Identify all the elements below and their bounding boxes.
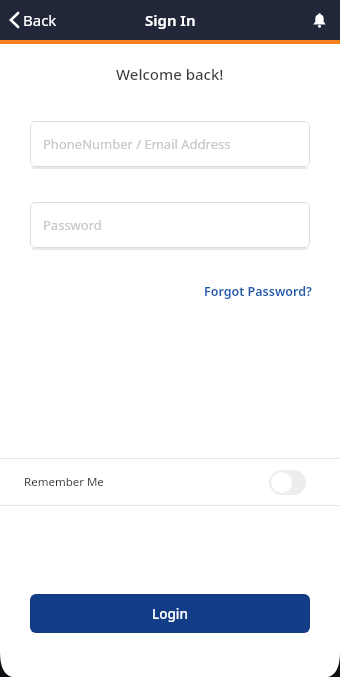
staticText: Sign In [145, 10, 196, 30]
button[interactable]: Login [30, 594, 310, 633]
button[interactable] [312, 13, 327, 28]
staticText: PhoneNumber / Email Address [43, 135, 231, 153]
staticText: Welcome back! [116, 64, 224, 84]
staticText: Back [23, 10, 57, 30]
button[interactable]: Back [8, 10, 57, 30]
button[interactable]: Forgot Password? [204, 283, 312, 300]
button[interactable]: PhoneNumber / Email Address [30, 121, 310, 167]
button[interactable]: Remember Me [0, 459, 340, 505]
button[interactable]: Password [30, 202, 310, 248]
staticText: Remember Me [24, 474, 104, 490]
staticText: Login [152, 605, 188, 623]
staticText: Password [43, 216, 102, 234]
button[interactable] [269, 470, 306, 495]
